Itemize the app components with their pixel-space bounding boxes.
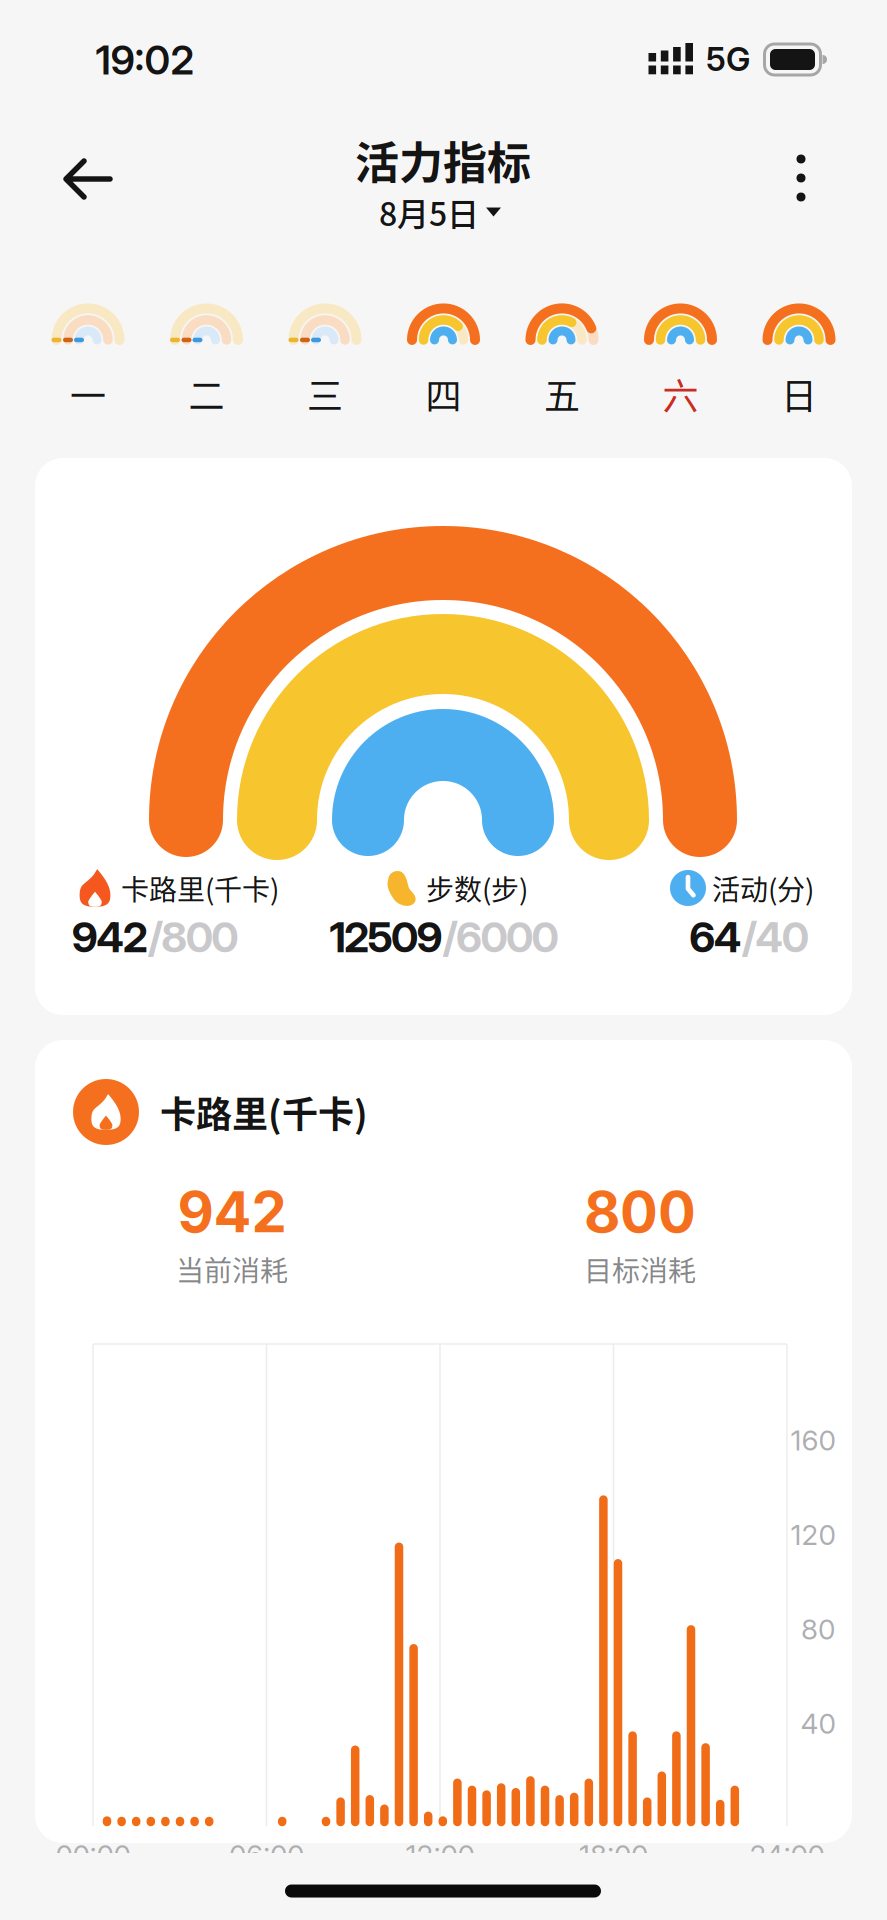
staticText: 40: [800, 1707, 835, 1741]
staticText: 三: [307, 368, 343, 420]
staticText: 活动(分): [712, 868, 814, 908]
staticText: 8月5日: [379, 189, 479, 235]
staticText: 18:00: [579, 1838, 648, 1872]
button[interactable]: More: [781, 152, 821, 204]
staticText: 目标消耗: [584, 1249, 696, 1289]
staticText: 二: [188, 368, 224, 420]
staticText: 步数(步): [426, 868, 528, 908]
button[interactable]: 日: [744, 290, 854, 418]
staticText: 160: [790, 1423, 835, 1457]
button[interactable]: Choose date: [379, 189, 501, 235]
button[interactable]: 三: [270, 290, 380, 418]
staticText: 120: [790, 1518, 835, 1552]
staticText: 活力指标: [355, 128, 531, 192]
staticText: 一: [70, 368, 106, 420]
staticText: 800: [584, 1178, 696, 1246]
staticText: 64: [689, 912, 742, 962]
staticText: 00:00: [55, 1838, 130, 1872]
button[interactable]: 二: [151, 290, 261, 418]
staticText: 80: [801, 1612, 835, 1646]
staticText: 942: [72, 912, 148, 962]
staticText: 12:00: [405, 1838, 474, 1872]
staticText: 四: [425, 368, 461, 420]
staticText: 五: [544, 368, 580, 420]
staticText: 六: [662, 368, 698, 420]
staticText: 24:00: [749, 1838, 824, 1872]
staticText: 卡路里(千卡): [121, 868, 279, 908]
staticText: 卡路里(千卡): [160, 1086, 368, 1138]
button[interactable]: 六: [625, 290, 735, 418]
button[interactable]: 四: [388, 290, 498, 418]
staticText: 942: [177, 1178, 286, 1246]
button[interactable]: Back: [60, 155, 116, 203]
staticText: 当前消耗: [176, 1249, 288, 1289]
staticText: 12509: [329, 912, 442, 962]
staticText: 19:02: [95, 36, 194, 84]
staticText: 06:00: [229, 1838, 304, 1872]
button[interactable]: 五: [507, 290, 617, 418]
staticText: 5G: [706, 39, 750, 79]
staticText: /6000: [442, 912, 558, 962]
staticText: /40: [742, 912, 809, 962]
staticText: /800: [148, 912, 238, 962]
button[interactable]: 一: [33, 290, 143, 418]
staticText: 日: [781, 368, 817, 420]
